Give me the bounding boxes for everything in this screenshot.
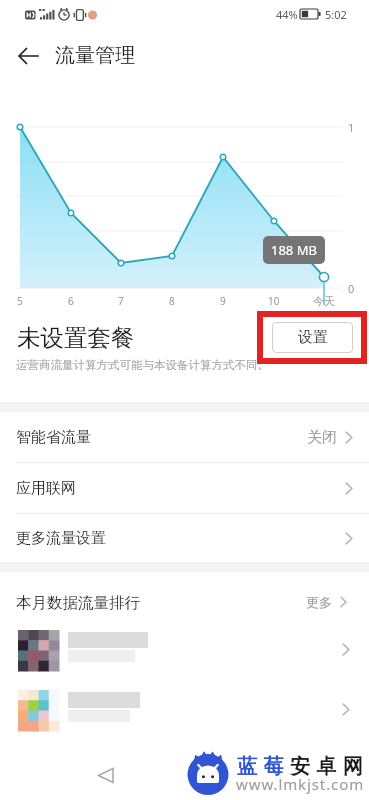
button[interactable]: 智能省流量 <box>0 412 369 462</box>
staticText: 流量管理 <box>55 43 135 68</box>
staticText: 智能省流量 <box>16 428 91 447</box>
staticText: 更多流量设置 <box>16 529 106 548</box>
button[interactable]: 更多流量设置 <box>0 514 369 562</box>
staticText: 1 <box>348 120 355 135</box>
staticText: 安卓网 <box>290 754 369 779</box>
staticText: 今天 <box>313 294 335 308</box>
staticText: 5:02 <box>325 7 347 22</box>
staticText: www.lmkjst.com <box>236 774 365 794</box>
button[interactable]: 应用联网 <box>0 463 369 513</box>
staticText: 本月数据流量排行 <box>16 593 140 613</box>
staticText: 44% <box>276 7 298 22</box>
staticText: 运营商流量计算方式可能与本设备计算方式不同。 <box>16 358 269 372</box>
button[interactable]: 更多 <box>306 594 347 610</box>
staticText: 0 <box>348 281 355 296</box>
staticText: 188 MB <box>271 241 317 259</box>
staticText: 7 <box>118 294 124 308</box>
staticText: 蓝莓 <box>237 754 290 779</box>
staticText: 6 <box>68 294 74 308</box>
staticText: 8 <box>169 294 175 308</box>
button[interactable] <box>0 620 369 680</box>
staticText: 关闭 <box>307 428 337 447</box>
button[interactable] <box>0 680 369 740</box>
staticText: 5 <box>17 294 23 308</box>
staticText: 未设置套餐 <box>17 323 135 353</box>
staticText: 9 <box>220 294 226 308</box>
staticText: 更多 <box>306 594 332 610</box>
staticText: 应用联网 <box>16 479 76 498</box>
staticText: 设置 <box>298 328 328 347</box>
button[interactable]: Back <box>7 34 51 78</box>
button[interactable]: Back <box>85 755 125 795</box>
staticText: 10 <box>268 294 280 308</box>
button[interactable]: 设置 <box>272 322 353 353</box>
